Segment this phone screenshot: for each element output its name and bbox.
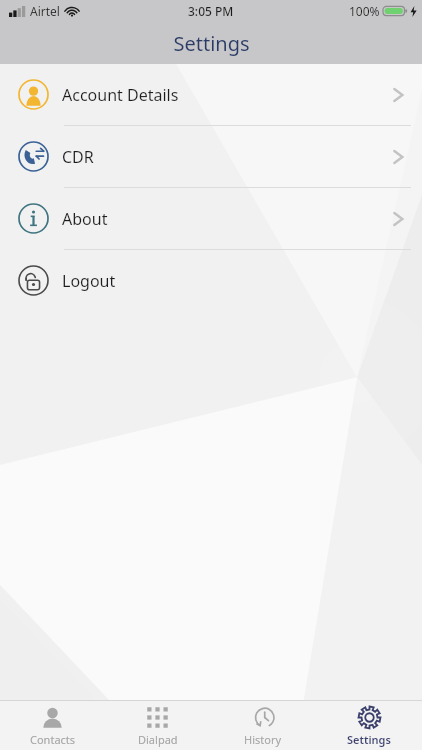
button[interactable]: Dialpad: [105, 701, 210, 750]
staticText: Logout: [62, 270, 116, 292]
staticText: 3:05 PM: [188, 3, 234, 19]
staticText: Settings: [173, 30, 250, 57]
button[interactable]: Contacts: [0, 701, 105, 750]
button[interactable]: Settings: [316, 701, 422, 750]
staticText: Dialpad: [138, 732, 178, 747]
button[interactable]: CDR: [0, 126, 422, 187]
button[interactable]: History: [210, 701, 316, 750]
button[interactable]: Logout: [0, 250, 422, 311]
staticText: Account Details: [62, 84, 179, 106]
staticText: 100%: [349, 3, 380, 19]
staticText: Contacts: [30, 732, 76, 747]
staticText: About: [62, 208, 108, 230]
staticText: CDR: [62, 146, 94, 168]
staticText: Airtel: [30, 3, 60, 19]
button[interactable]: About: [0, 188, 422, 249]
staticText: History: [244, 732, 282, 747]
button[interactable]: Account Details: [0, 64, 422, 125]
staticText: Settings: [347, 732, 391, 747]
